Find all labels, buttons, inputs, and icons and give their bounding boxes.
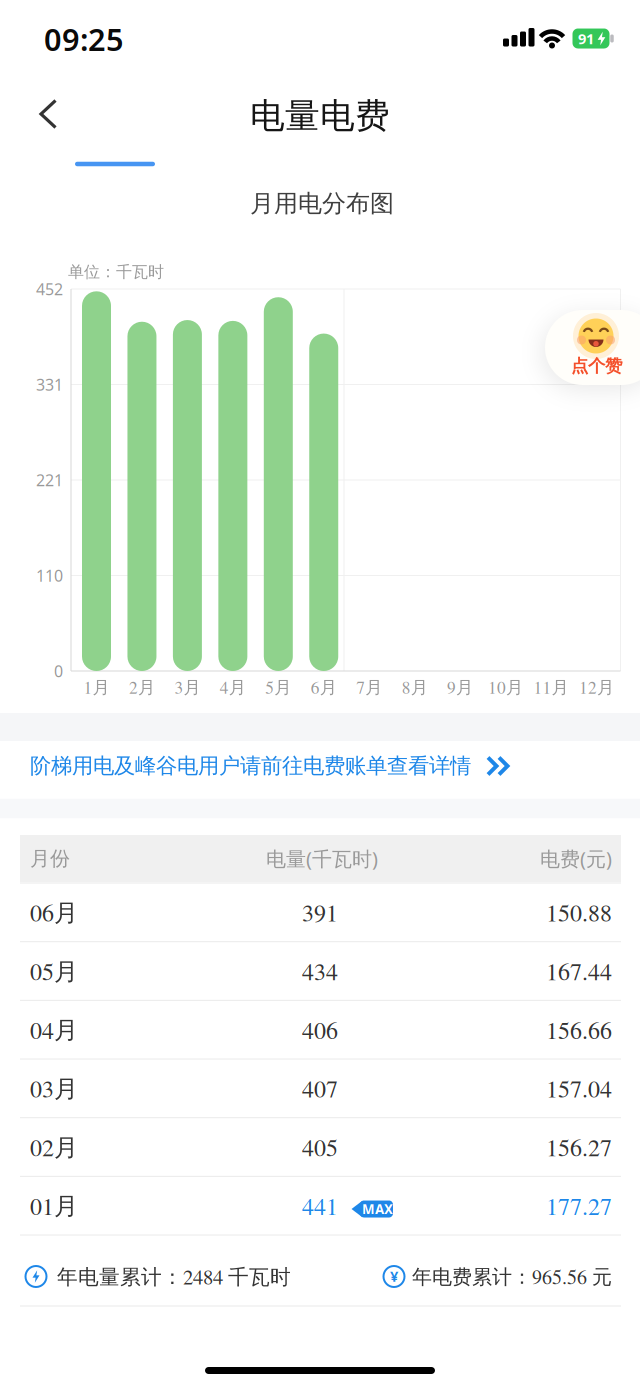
staticText: 167.44	[546, 955, 612, 987]
staticText: 年电费累计：965.56 元	[412, 1263, 612, 1290]
staticText: 221	[36, 469, 63, 491]
staticText: 12月	[579, 675, 614, 699]
staticText: 150.88	[546, 896, 612, 928]
staticText: 331	[36, 374, 63, 395]
button[interactable]	[38, 97, 74, 137]
staticText: 405	[302, 1131, 338, 1163]
staticText: 452	[36, 278, 63, 300]
staticText: 5月	[265, 675, 291, 699]
staticText: 391	[302, 896, 338, 928]
staticText: 9月	[447, 675, 473, 699]
staticText: ¥	[390, 1266, 398, 1286]
staticText: 年电量累计：2484 千瓦时	[57, 1263, 291, 1290]
staticText: 04月	[30, 1014, 78, 1046]
staticText: 06月	[30, 896, 78, 928]
staticText: 电费(元)	[540, 845, 612, 872]
staticText: 157.04	[546, 1072, 612, 1104]
staticText: 阶梯用电及峰谷电用户请前往电费账单查看详情	[30, 753, 471, 779]
staticText: 03月	[30, 1072, 78, 1104]
staticText: 单位：千瓦时	[68, 262, 164, 282]
staticText: 8月	[402, 675, 428, 699]
staticText: 2月	[129, 675, 155, 699]
button[interactable]	[75, 162, 155, 166]
staticText: 6月	[311, 675, 337, 699]
staticText: 01月	[30, 1190, 78, 1222]
staticText: 7月	[356, 675, 382, 699]
staticText: 电量(千瓦时)	[266, 845, 378, 872]
button[interactable]: 阶梯用电及峰谷电用户请前往电费账单查看详情	[20, 738, 620, 794]
staticText: 407	[302, 1072, 338, 1104]
staticText: 月用电分布图	[250, 189, 394, 218]
staticText: 177.27	[546, 1190, 612, 1222]
staticText: 10月	[488, 675, 523, 699]
staticText: MAX	[362, 1200, 393, 1218]
staticText: 91	[578, 29, 594, 48]
staticText: 02月	[30, 1131, 78, 1163]
staticText: 月份	[30, 846, 70, 871]
staticText: 4月	[220, 675, 246, 699]
staticText: 110	[36, 565, 63, 586]
staticText: 156.66	[546, 1014, 612, 1046]
staticText: 434	[302, 955, 338, 987]
staticText: 406	[302, 1014, 338, 1046]
staticText: 电量电费	[250, 95, 390, 137]
staticText: 156.27	[546, 1131, 612, 1163]
staticText: 点个赞	[571, 355, 622, 377]
staticText: 0	[54, 660, 63, 682]
staticText: 441	[302, 1190, 338, 1222]
staticText: 11月	[533, 675, 568, 699]
staticText: 09:25	[44, 19, 124, 59]
staticText: 05月	[30, 955, 78, 987]
staticText: 3月	[174, 675, 200, 699]
button[interactable]: 点个赞	[545, 310, 640, 385]
staticText: 1月	[83, 675, 109, 699]
